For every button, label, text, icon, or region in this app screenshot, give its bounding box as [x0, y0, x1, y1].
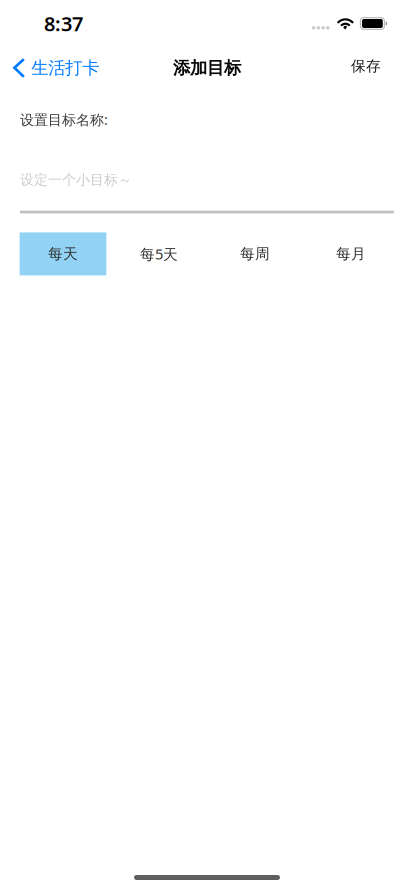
button[interactable]: 每月	[303, 232, 399, 275]
staticText: 设置目标名称:	[20, 110, 108, 129]
staticText: 每月	[336, 245, 366, 263]
button[interactable]: 保存	[339, 49, 414, 87]
staticText: 每周	[240, 245, 270, 263]
button[interactable]: 每5天	[111, 232, 207, 275]
staticText: 8:37	[44, 10, 83, 37]
button[interactable]: 每周	[207, 232, 303, 275]
staticText: 每天	[48, 245, 78, 263]
staticText: 生活打卡	[31, 57, 99, 79]
staticText: 每5天	[140, 244, 178, 264]
staticText: 添加目标	[173, 57, 241, 79]
button[interactable]: 每天	[15, 232, 111, 275]
button[interactable]: 设定一个小目标～	[0, 129, 414, 213]
button[interactable]: 生活打卡	[0, 50, 107, 86]
staticText: 设定一个小目标～	[20, 171, 132, 189]
staticText: 保存	[351, 57, 381, 75]
